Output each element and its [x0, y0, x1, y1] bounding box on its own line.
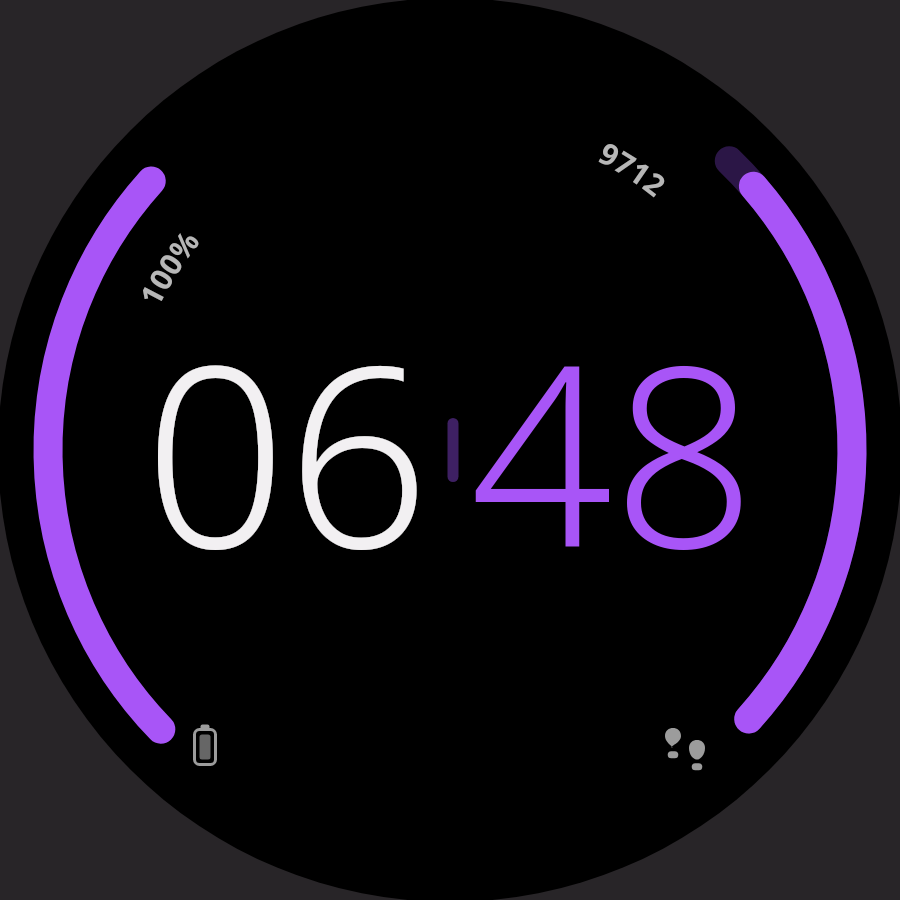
button[interactable]: Watch face, 06:48 — [0, 0, 900, 900]
